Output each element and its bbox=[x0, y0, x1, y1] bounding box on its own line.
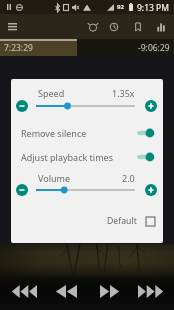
staticText: 9:13 PM bbox=[137, 2, 169, 12]
button[interactable]: Equalizer bbox=[151, 14, 171, 39]
staticText: Default bbox=[107, 215, 137, 227]
staticText: 7:23:29 bbox=[4, 42, 33, 54]
staticText: Speed bbox=[38, 87, 65, 99]
button[interactable]: Rewind 30 seconds bbox=[5, 273, 43, 310]
staticText: Volume bbox=[38, 172, 71, 184]
button[interactable]: Decrease bbox=[16, 184, 28, 196]
button[interactable]: Rewind 10 seconds bbox=[47, 273, 85, 310]
button[interactable]: Decrease bbox=[16, 100, 28, 112]
staticText: Remove silence bbox=[21, 127, 87, 139]
button[interactable]: Adjust playback times bbox=[11, 146, 163, 168]
button[interactable]: Increase bbox=[145, 100, 157, 112]
staticText: 92% bbox=[117, 3, 128, 11]
staticText: 1.35x bbox=[112, 87, 135, 99]
button[interactable]: Remove silence bbox=[11, 122, 163, 144]
button[interactable]: Increase bbox=[145, 184, 157, 196]
button[interactable]: Playback speed bbox=[104, 14, 124, 39]
button[interactable]: Forward 10 seconds bbox=[91, 273, 129, 310]
button[interactable]: Default checkbox bbox=[143, 211, 157, 231]
button[interactable]: Bookmark bbox=[128, 14, 148, 39]
staticText: -9:06:29 bbox=[138, 42, 170, 54]
button[interactable]: Forward 30 seconds bbox=[132, 273, 170, 310]
staticText: 2.0 bbox=[122, 172, 135, 184]
button[interactable]: Default bbox=[107, 211, 141, 231]
button[interactable]: Menu bbox=[0, 14, 25, 39]
button[interactable]: Sleep timer bbox=[83, 14, 103, 39]
staticText: Adjust playback times bbox=[21, 151, 113, 163]
